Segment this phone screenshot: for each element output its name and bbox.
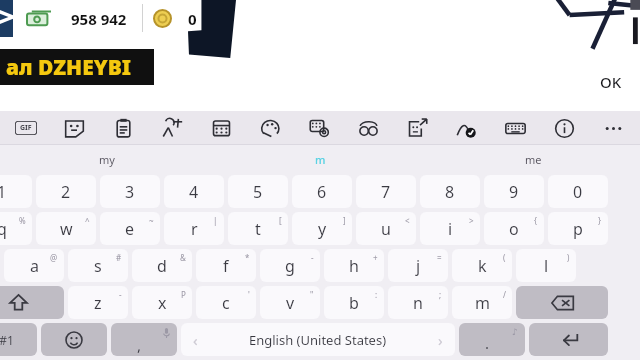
button[interactable]: Calculator (197, 111, 246, 145)
staticText: c (222, 292, 230, 314)
button[interactable]: p (548, 212, 608, 245)
button[interactable]: OK (592, 68, 630, 96)
button[interactable]: a (4, 249, 64, 282)
staticText: h (349, 255, 359, 277)
button[interactable]: Emoji (41, 323, 107, 356)
button[interactable]: Stickers (50, 111, 99, 145)
button[interactable]: Enter (529, 323, 608, 356)
staticText: 6 (317, 181, 327, 203)
staticText: o (509, 218, 519, 240)
staticText: ( (503, 252, 506, 263)
staticText: a (30, 255, 39, 277)
button[interactable]: u (356, 212, 416, 245)
staticText: - (311, 252, 314, 263)
staticText: 9 (509, 181, 519, 203)
button[interactable]: m (214, 145, 427, 173)
button[interactable]: Translate (148, 111, 197, 145)
staticText: 4 (189, 181, 199, 203)
button[interactable]: Shift (0, 286, 64, 319)
button[interactable]: l (516, 249, 576, 282)
staticText: ♪ (512, 327, 518, 337)
button[interactable]: Incognito mode (344, 111, 393, 145)
button[interactable]: o (484, 212, 544, 245)
button[interactable]: Info (540, 111, 589, 145)
button[interactable]: b (324, 286, 384, 319)
button[interactable]: Floating keyboard (393, 111, 442, 145)
button[interactable]: Clipboard (99, 111, 148, 145)
button[interactable]: my (0, 145, 214, 173)
staticText: 0 (573, 181, 583, 203)
button[interactable]: s (68, 249, 128, 282)
button[interactable]: Themes (246, 111, 295, 145)
button[interactable]: Keyboard layout (491, 111, 540, 145)
button[interactable]: 958 942 (13, 0, 209, 36)
button[interactable]: 9 (484, 175, 544, 208)
staticText: ) (567, 252, 570, 263)
button[interactable]: Handwriting (442, 111, 491, 145)
staticText: i (448, 218, 453, 240)
staticText: r (191, 218, 198, 240)
button[interactable]: r (164, 212, 224, 245)
button[interactable]: c (196, 286, 256, 319)
staticText: › (438, 330, 443, 350)
button[interactable]: Backspace (516, 286, 608, 319)
button[interactable]: f (196, 249, 256, 282)
button[interactable]: Settings (295, 111, 344, 145)
staticText: GIF (20, 123, 32, 133)
button[interactable]: GIF (2, 111, 50, 145)
button[interactable]: h (324, 249, 384, 282)
button[interactable]: i (420, 212, 480, 245)
button[interactable]: q (0, 212, 32, 245)
button[interactable]: Comma, voice input (111, 323, 177, 356)
staticText: OK (600, 72, 622, 92)
button[interactable]: d (132, 249, 192, 282)
staticText: - (119, 289, 122, 300)
button[interactable]: English (United States) (181, 323, 455, 356)
staticText: me (525, 152, 542, 167)
staticText: < (405, 215, 410, 226)
staticText: s (94, 255, 102, 277)
button[interactable]: Symbols (0, 323, 37, 356)
button[interactable]: 0 (548, 175, 608, 208)
staticText: y (318, 218, 327, 240)
staticText: { (534, 215, 538, 226)
button[interactable]: 6 (292, 175, 352, 208)
staticText: / (503, 289, 506, 300)
staticText: + (373, 252, 378, 263)
staticText: > (469, 215, 474, 226)
button[interactable]: k (452, 249, 512, 282)
staticText: my (99, 152, 115, 167)
staticText: l (544, 255, 549, 277)
staticText: ] (343, 215, 346, 226)
button[interactable]: 8 (420, 175, 480, 208)
button[interactable]: 3 (100, 175, 160, 208)
staticText: ‹ (193, 330, 198, 350)
button[interactable]: me (427, 145, 640, 173)
button[interactable]: n (388, 286, 448, 319)
button[interactable]: m (452, 286, 512, 319)
staticText: P (181, 289, 186, 300)
staticText: z (94, 292, 102, 314)
staticText: 0 (188, 9, 197, 29)
button[interactable]: y (292, 212, 352, 245)
staticText: 5 (253, 181, 263, 203)
button[interactable]: g (260, 249, 320, 282)
staticText: d (157, 255, 167, 277)
button[interactable]: 5 (228, 175, 288, 208)
staticText: 7 (381, 181, 391, 203)
staticText: e (125, 218, 135, 240)
button[interactable]: j (388, 249, 448, 282)
staticText: , (137, 335, 142, 355)
button[interactable]: 7 (356, 175, 416, 208)
button[interactable]: More options (589, 111, 638, 145)
button[interactable]: w (36, 212, 96, 245)
button[interactable]: v (260, 286, 320, 319)
button[interactable]: 1 (0, 175, 32, 208)
button[interactable]: e (100, 212, 160, 245)
button[interactable]: 4 (164, 175, 224, 208)
button[interactable]: z (68, 286, 128, 319)
button[interactable]: Period (459, 323, 525, 356)
button[interactable]: x (132, 286, 192, 319)
button[interactable]: 2 (36, 175, 96, 208)
button[interactable]: t (228, 212, 288, 245)
